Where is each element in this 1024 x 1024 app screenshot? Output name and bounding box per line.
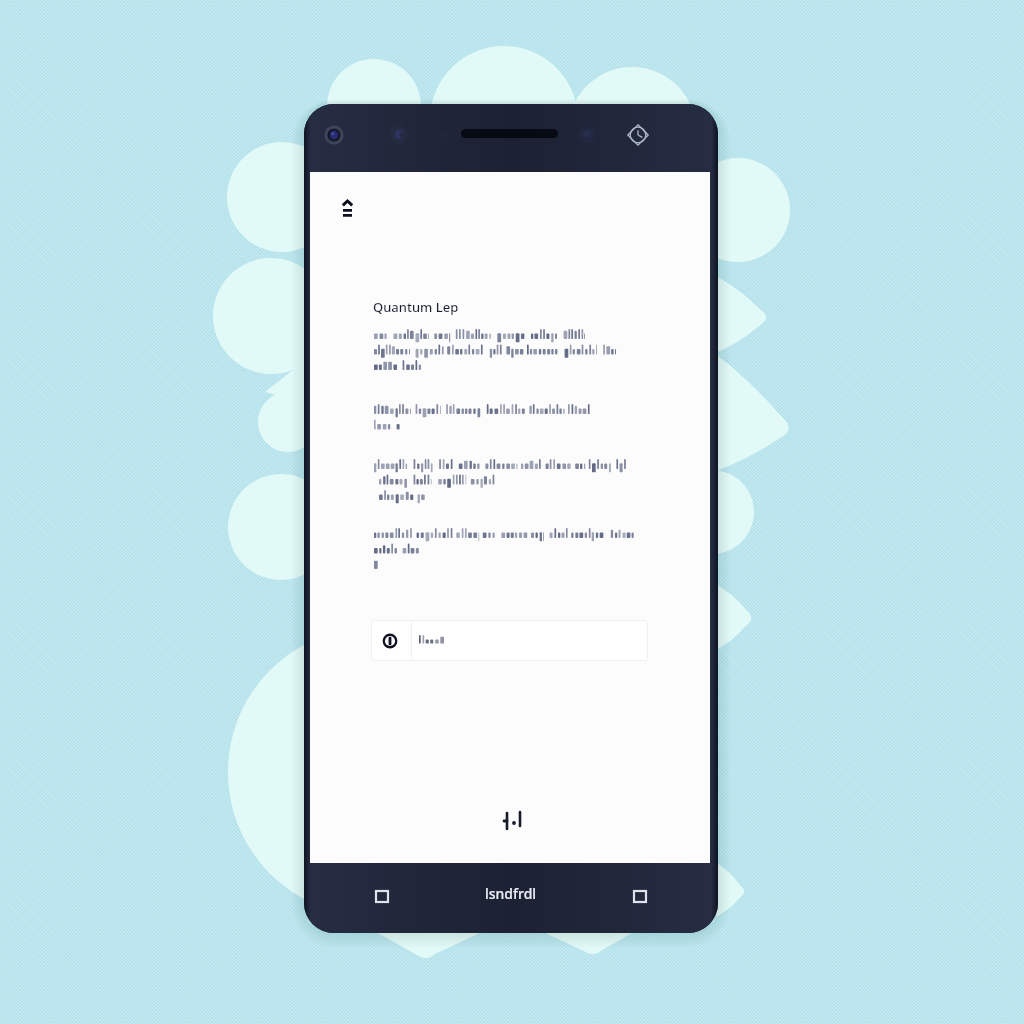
button[interactable]: Menu bbox=[332, 191, 364, 223]
button[interactable]: lsndfrdl bbox=[485, 884, 537, 903]
staticText: lsndfrdl bbox=[485, 884, 537, 903]
button[interactable]: Recents bbox=[364, 878, 400, 914]
staticText: Quantum Lep bbox=[373, 298, 459, 316]
button[interactable]: Back bbox=[622, 878, 658, 914]
button[interactable] bbox=[371, 620, 648, 661]
